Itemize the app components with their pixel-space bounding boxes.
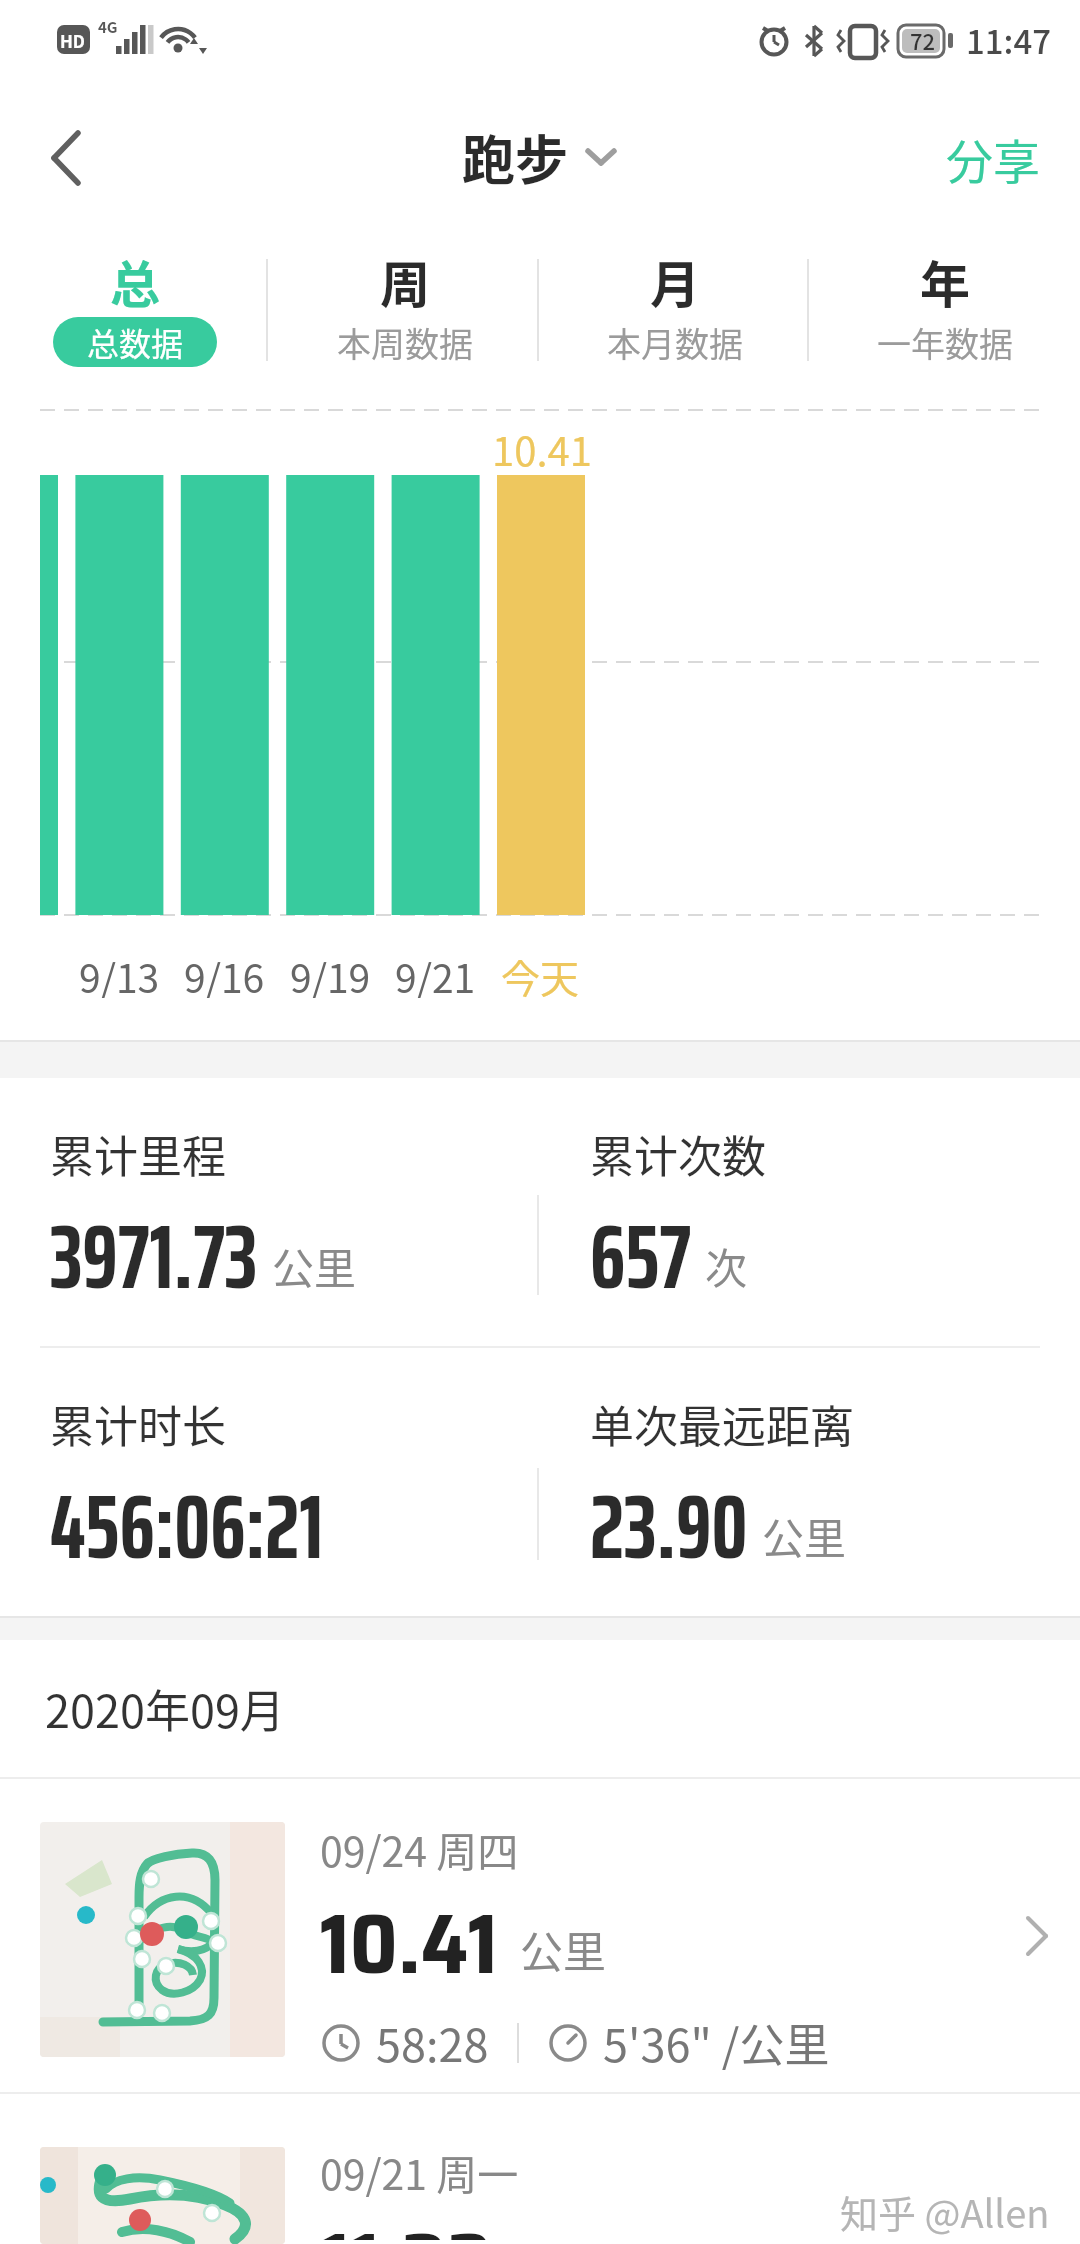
staticText: 一年数据 bbox=[877, 318, 1013, 367]
staticText: 公里 bbox=[520, 1918, 606, 1980]
staticText: 657 bbox=[590, 1186, 691, 1328]
staticText: 跑步 bbox=[462, 119, 568, 196]
staticText: 09/24 周四 bbox=[320, 1819, 519, 1878]
staticText: 9/13 bbox=[79, 948, 160, 998]
staticText: 单次最远距离 bbox=[590, 1392, 854, 1456]
staticText: 11:47 bbox=[966, 16, 1052, 64]
staticText: 累计时长 bbox=[50, 1392, 226, 1456]
staticText: 11.32 bbox=[320, 2197, 492, 2240]
staticText: 456:06:21 bbox=[50, 1456, 324, 1598]
button[interactable]: 周 bbox=[270, 215, 540, 370]
staticText: 本月数据 bbox=[607, 318, 743, 367]
staticText: 年 bbox=[920, 245, 970, 317]
staticText: 5'36" /公里 bbox=[603, 2010, 830, 2075]
staticText: 9/19 bbox=[290, 948, 371, 998]
staticText: 09/21 周一 bbox=[320, 2142, 519, 2201]
button[interactable]: 跑步 bbox=[462, 119, 618, 196]
staticText: 月 bbox=[650, 245, 700, 317]
staticText: 公里 bbox=[272, 1235, 357, 1296]
staticText: 58:28 bbox=[376, 2010, 489, 2075]
staticText: HD bbox=[60, 28, 86, 53]
staticText: 9/16 bbox=[184, 948, 265, 998]
button[interactable]: 年 bbox=[810, 215, 1080, 370]
staticText: 23.90 bbox=[590, 1456, 748, 1598]
staticText: 总 bbox=[110, 245, 160, 317]
staticText: 本周数据 bbox=[337, 318, 473, 367]
button[interactable]: 09/24 周四 bbox=[0, 1779, 1080, 2094]
button[interactable]: 月 bbox=[540, 215, 810, 370]
staticText: 4G bbox=[98, 16, 118, 38]
staticText: 累计次数 bbox=[590, 1122, 766, 1186]
staticText: 周 bbox=[380, 245, 430, 317]
staticText: 总数据 bbox=[87, 319, 184, 365]
staticText: 9/21 bbox=[395, 948, 476, 998]
staticText: 今天 bbox=[501, 948, 580, 998]
button[interactable]: 09/21 周一 bbox=[0, 2094, 1080, 2244]
button[interactable]: 总 bbox=[0, 215, 270, 370]
staticText: 10.41 bbox=[320, 1878, 498, 2010]
staticText: 2020年09月 bbox=[45, 1676, 285, 1741]
staticText: 次 bbox=[705, 1235, 748, 1296]
staticText: 公里 bbox=[762, 1505, 847, 1566]
staticText: 3971.73 bbox=[50, 1186, 258, 1328]
staticText: 知乎 @Allen bbox=[840, 2184, 1050, 2239]
staticText: 累计里程 bbox=[50, 1122, 226, 1186]
button[interactable]: 分享 bbox=[946, 124, 1040, 192]
staticText: 10.41 bbox=[480, 420, 604, 478]
staticText: 72 bbox=[910, 24, 936, 56]
button[interactable] bbox=[40, 128, 100, 188]
